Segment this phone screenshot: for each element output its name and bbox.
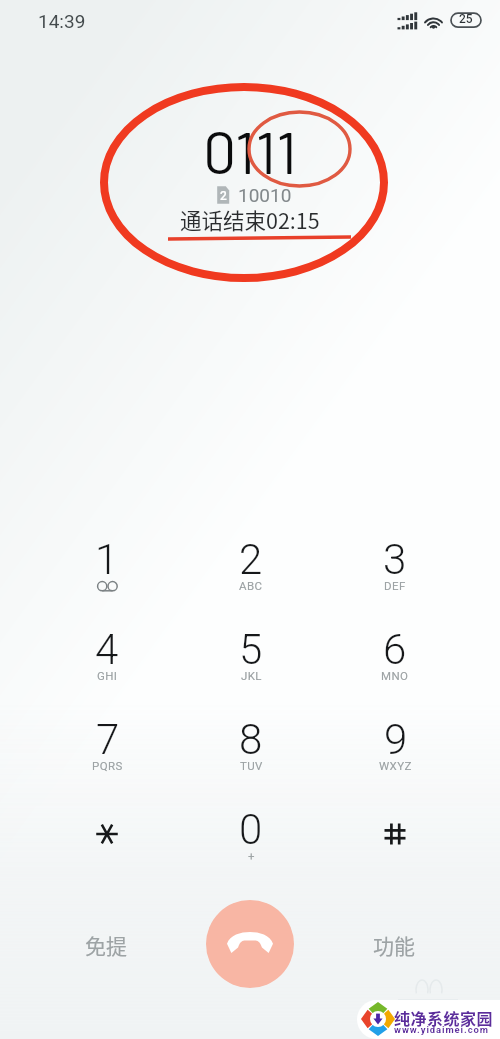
button[interactable]: 2 xyxy=(179,535,323,625)
button[interactable]: 5 xyxy=(179,625,323,715)
button[interactable]: 免提 xyxy=(56,911,156,979)
staticText: 0 xyxy=(239,805,263,854)
button[interactable]: End call xyxy=(206,900,294,988)
staticText: DEF xyxy=(384,579,406,592)
staticText: 1 xyxy=(95,535,119,584)
staticText: 通话结束02:15 xyxy=(180,204,320,235)
staticText: GHI xyxy=(97,669,118,682)
staticText: 0111 xyxy=(203,115,297,186)
button[interactable]: 7 xyxy=(35,715,179,805)
staticText: 25 xyxy=(459,12,473,26)
staticText: 免提 xyxy=(85,930,127,960)
staticText: PQRS xyxy=(92,759,123,772)
staticText: 2 xyxy=(239,535,263,584)
staticText: www.yidaimei.com xyxy=(394,1024,489,1035)
staticText: 2 xyxy=(220,189,227,203)
staticText: 5 xyxy=(239,625,263,674)
staticText: WXYZ xyxy=(379,759,412,772)
button[interactable]: 功能 xyxy=(344,911,444,979)
staticText: 6 xyxy=(383,625,407,674)
staticText: 4 xyxy=(95,625,119,674)
button[interactable]: 0 xyxy=(179,805,323,895)
staticText: 9 xyxy=(384,715,408,764)
staticText: + xyxy=(248,849,255,862)
staticText: 10010 xyxy=(238,184,292,206)
staticText: 8 xyxy=(239,715,263,764)
staticText: MNO xyxy=(381,669,409,682)
staticText: 3 xyxy=(383,535,407,584)
staticText: JKL xyxy=(241,669,262,682)
button[interactable] xyxy=(35,805,179,895)
staticText: 纯净系统家园 xyxy=(394,1006,494,1029)
staticText: 7 xyxy=(96,715,120,764)
staticText: ABC xyxy=(239,579,263,592)
button[interactable] xyxy=(323,805,467,895)
button[interactable]: 9 xyxy=(323,715,467,805)
button[interactable]: 1 xyxy=(35,535,179,625)
staticText: 14:39 xyxy=(38,10,86,32)
button[interactable]: 4 xyxy=(35,625,179,715)
button[interactable]: 3 xyxy=(323,535,467,625)
button[interactable]: 6 xyxy=(323,625,467,715)
staticText: TUV xyxy=(240,759,263,772)
button[interactable]: 8 xyxy=(179,715,323,805)
staticText: 功能 xyxy=(373,930,415,960)
